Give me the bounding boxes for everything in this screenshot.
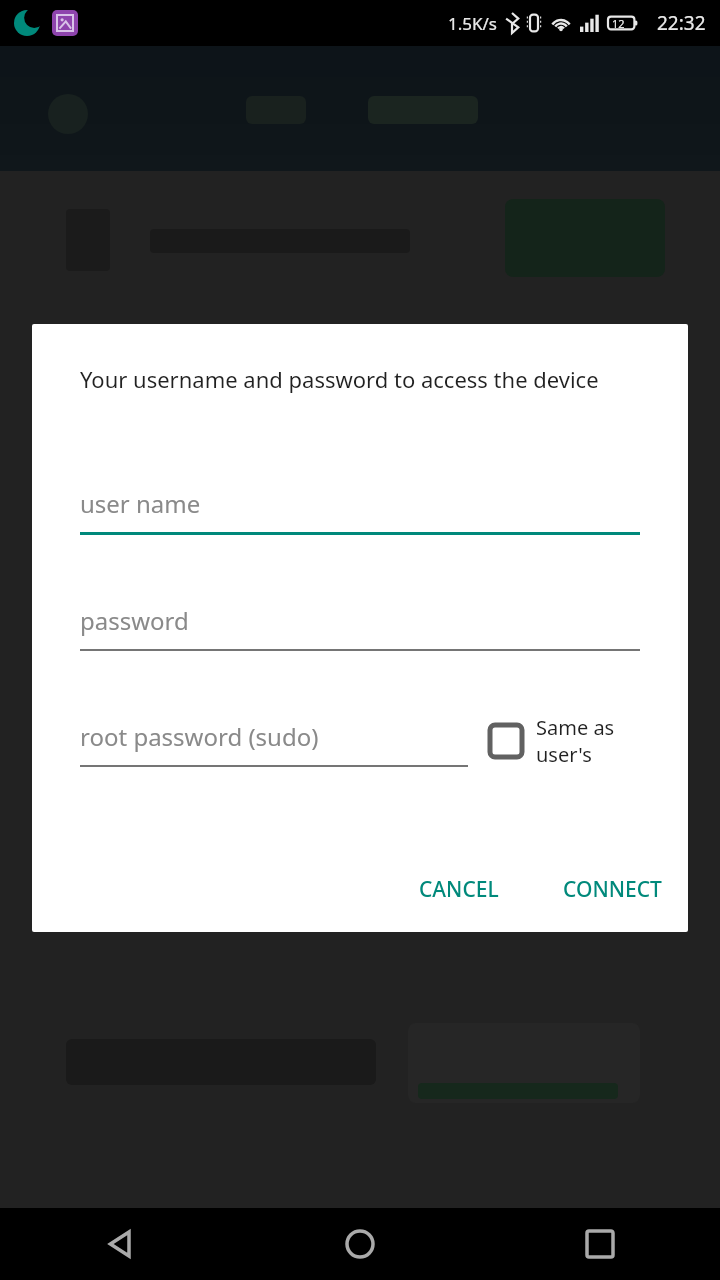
staticText: Your username and password to access the… xyxy=(80,364,599,394)
staticText: user name xyxy=(80,487,201,520)
staticText: CANCEL xyxy=(419,875,499,904)
button[interactable]: user name xyxy=(80,487,640,535)
staticText: password xyxy=(80,604,189,637)
staticText: 12 xyxy=(612,16,625,31)
staticText: CONNECT xyxy=(563,875,662,904)
button[interactable]: Back xyxy=(90,1214,150,1274)
staticText: Same as user's xyxy=(536,714,656,768)
button[interactable]: password xyxy=(80,604,640,651)
button[interactable]: CONNECT xyxy=(545,863,680,916)
staticText: 1.5K/s xyxy=(448,12,497,35)
other: Same as user's xyxy=(488,723,524,759)
staticText: 22:32 xyxy=(657,10,706,36)
staticText: root password (sudo) xyxy=(80,720,319,753)
button[interactable]: Same as user's xyxy=(484,710,660,772)
button[interactable]: root password (sudo) xyxy=(80,720,468,767)
button[interactable]: Recents xyxy=(570,1214,630,1274)
button[interactable]: Home xyxy=(330,1214,390,1274)
button[interactable]: CANCEL xyxy=(401,863,517,916)
